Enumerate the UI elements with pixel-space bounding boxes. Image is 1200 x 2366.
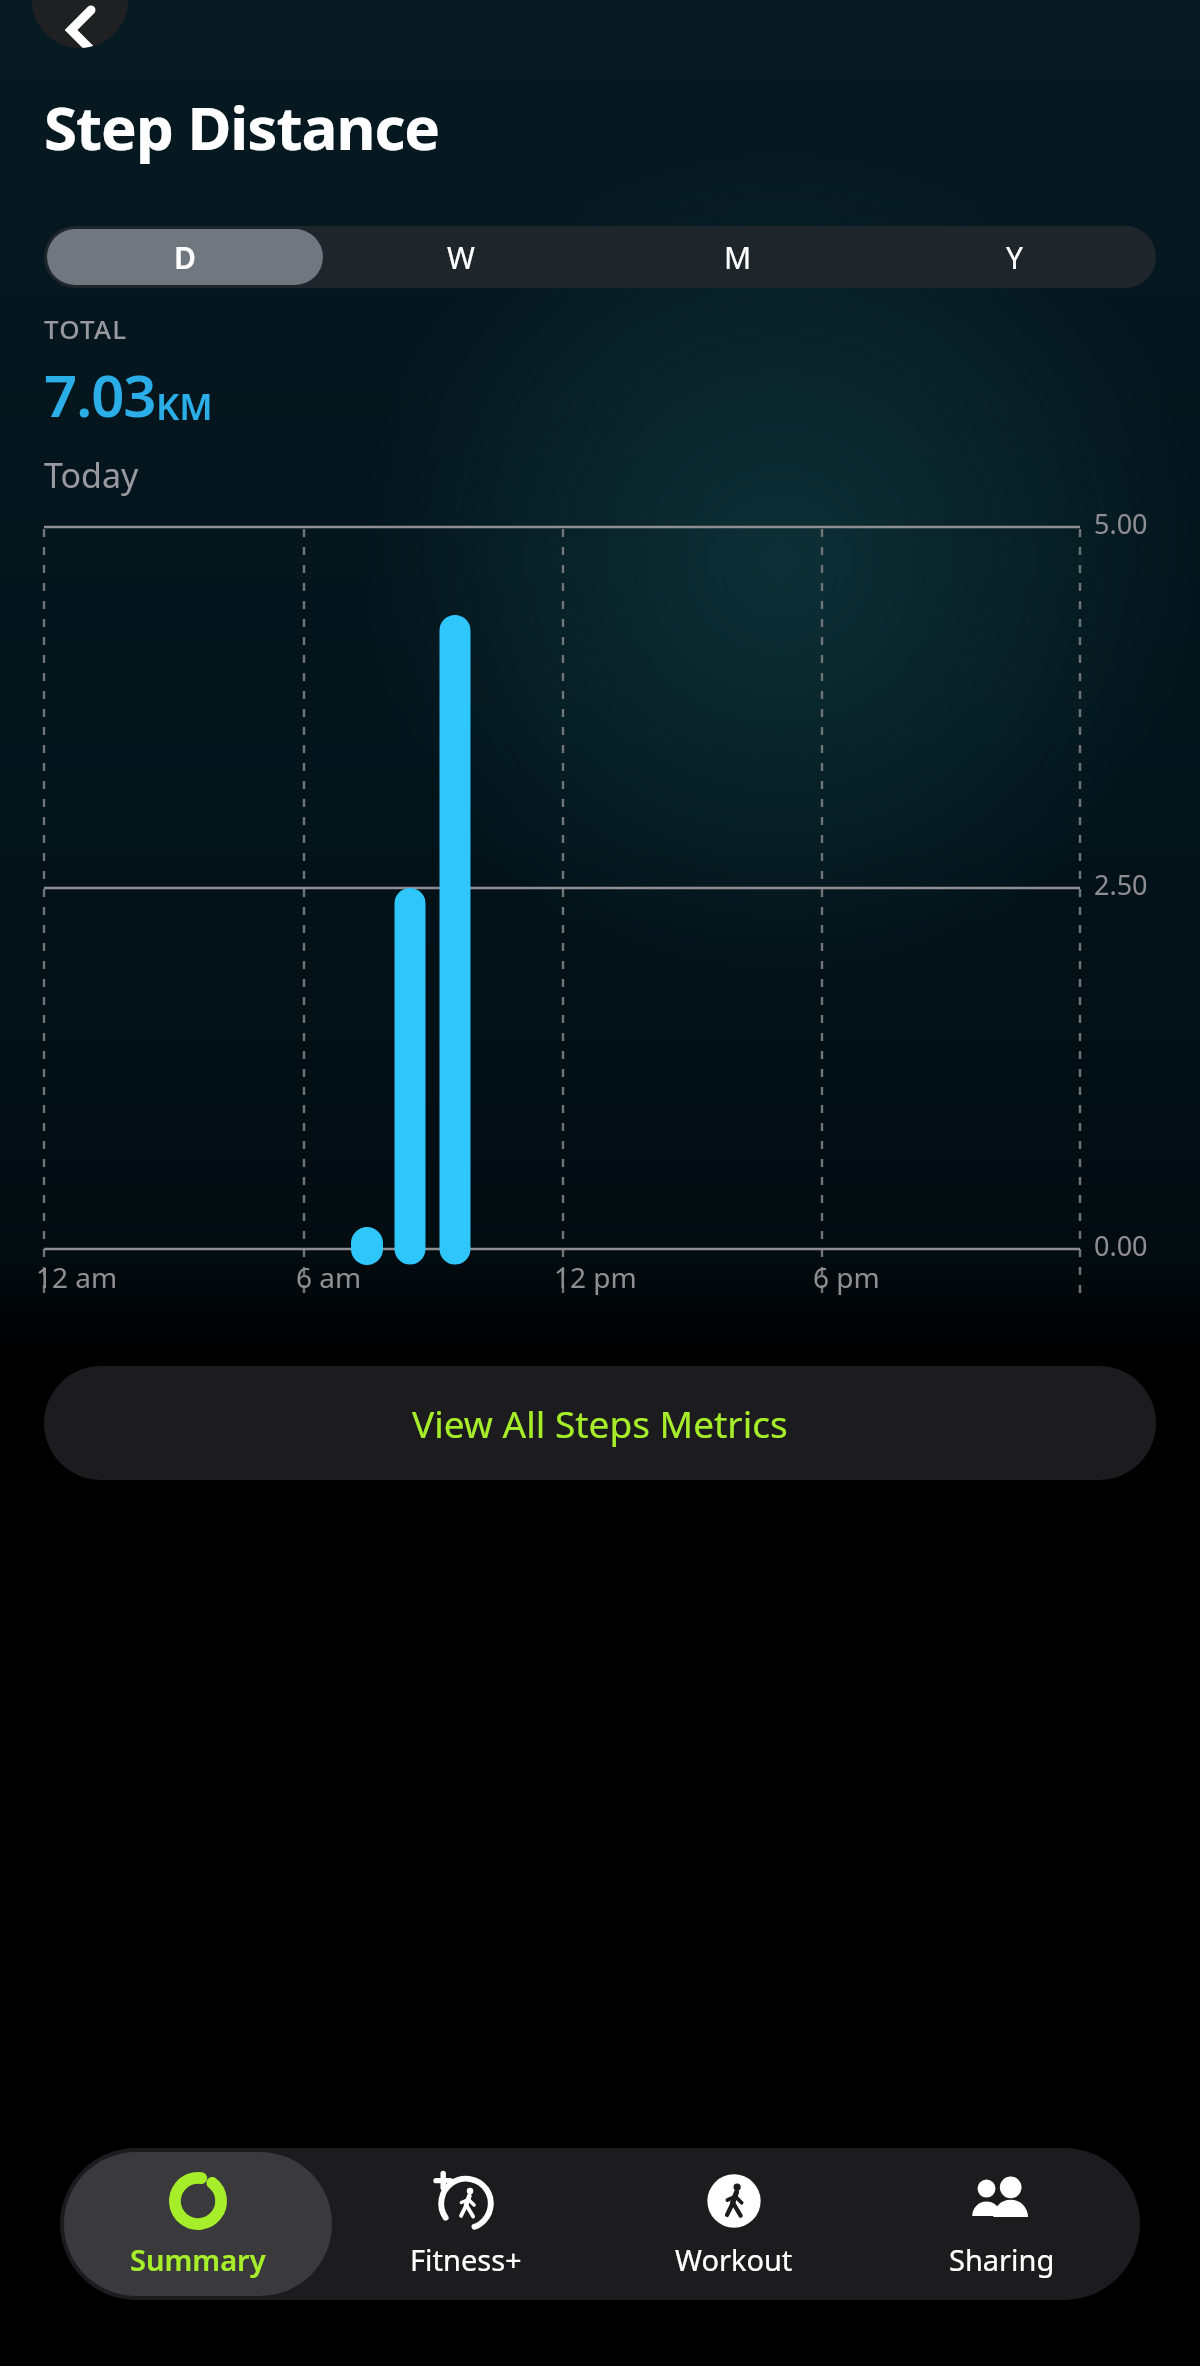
staticText: KM bbox=[156, 382, 213, 431]
staticText: W bbox=[447, 237, 475, 278]
staticText: 6 am bbox=[296, 1258, 362, 1296]
button[interactable]: Y bbox=[876, 229, 1153, 285]
button[interactable]: Sharing bbox=[868, 2152, 1136, 2296]
button[interactable]: Back bbox=[32, 0, 128, 48]
staticText: 2.50 bbox=[1094, 866, 1148, 903]
staticText: Sharing bbox=[949, 2240, 1055, 2279]
staticText: M bbox=[724, 237, 752, 278]
staticText: 5.00 bbox=[1094, 505, 1148, 542]
staticText: Workout bbox=[675, 2240, 793, 2279]
button[interactable]: Workout bbox=[600, 2152, 868, 2296]
button[interactable]: M bbox=[599, 229, 876, 285]
staticText: Step Distance bbox=[44, 86, 440, 168]
staticText: 6 pm bbox=[813, 1258, 880, 1296]
staticText: 0.00 bbox=[1094, 1227, 1148, 1264]
button[interactable]: D bbox=[47, 229, 323, 285]
staticText: 12 am bbox=[36, 1258, 118, 1296]
button[interactable]: Summary bbox=[64, 2152, 332, 2296]
button[interactable]: View All Steps Metrics bbox=[44, 1366, 1156, 1480]
staticText: 12 pm bbox=[554, 1258, 637, 1296]
staticText: Today bbox=[44, 452, 139, 498]
button[interactable]: Fitness+ bbox=[332, 2152, 600, 2296]
staticText: 7.03 bbox=[44, 355, 156, 434]
staticText: View All Steps Metrics bbox=[412, 1398, 788, 1448]
staticText: Fitness+ bbox=[410, 2240, 522, 2279]
staticText: Y bbox=[1006, 237, 1023, 278]
staticText: Summary bbox=[130, 2240, 266, 2279]
staticText: TOTAL bbox=[44, 311, 128, 346]
button[interactable]: W bbox=[323, 229, 599, 285]
staticText: D bbox=[174, 237, 196, 278]
